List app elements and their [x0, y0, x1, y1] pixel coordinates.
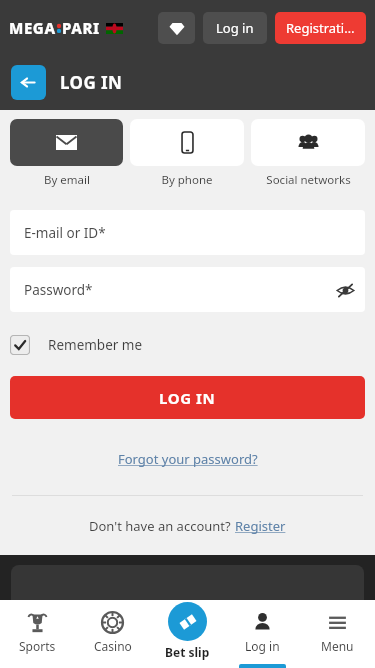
- button[interactable]: By email: [10, 119, 123, 188]
- staticText: Registrati…: [286, 19, 355, 37]
- button[interactable]: MEGA: [9, 18, 123, 38]
- button[interactable]: Bonuses: [158, 12, 195, 44]
- button[interactable]: Register: [235, 517, 286, 535]
- staticText: By phone: [161, 172, 213, 188]
- staticText: Log in: [216, 19, 254, 37]
- staticText: Don't have an account?: [89, 517, 235, 535]
- staticText: MEGA: [9, 18, 56, 38]
- staticText: Password*: [24, 281, 93, 299]
- staticText: E-mail or ID*: [24, 224, 106, 242]
- button[interactable]: LOG IN: [10, 376, 365, 419]
- staticText: Log in: [245, 638, 280, 654]
- staticText: Social networks: [266, 172, 351, 188]
- staticText: Menu: [321, 638, 354, 654]
- button[interactable]: Remember me: [10, 335, 365, 355]
- button[interactable]: Log in: [225, 600, 300, 668]
- button[interactable]: Registrati…: [275, 12, 366, 44]
- staticText: Sports: [19, 638, 56, 654]
- button[interactable]: By phone: [130, 119, 244, 188]
- staticText: Forgot your password?: [118, 450, 258, 468]
- staticText: By email: [44, 172, 90, 188]
- button[interactable]: Social networks: [251, 119, 365, 188]
- staticText: LOG IN: [159, 388, 216, 408]
- staticText: Casino: [94, 638, 132, 654]
- button[interactable]: Back: [11, 65, 46, 100]
- staticText: Remember me: [48, 336, 143, 354]
- button[interactable]: Log in: [203, 12, 267, 44]
- staticText: PARI: [62, 18, 100, 38]
- button[interactable]: Show password: [325, 270, 365, 310]
- button[interactable]: Casino: [75, 600, 150, 668]
- button[interactable]: Forgot your password?: [114, 446, 262, 472]
- staticText: Register: [235, 517, 286, 535]
- staticText: Bet slip: [165, 644, 210, 660]
- button[interactable]: Password*: [10, 267, 365, 312]
- staticText: LOG IN: [60, 71, 123, 94]
- button[interactable]: Sports: [0, 600, 75, 668]
- button[interactable]: Menu: [300, 600, 375, 668]
- button[interactable]: Bet slip: [150, 600, 225, 668]
- button[interactable]: E-mail or ID*: [10, 210, 365, 255]
